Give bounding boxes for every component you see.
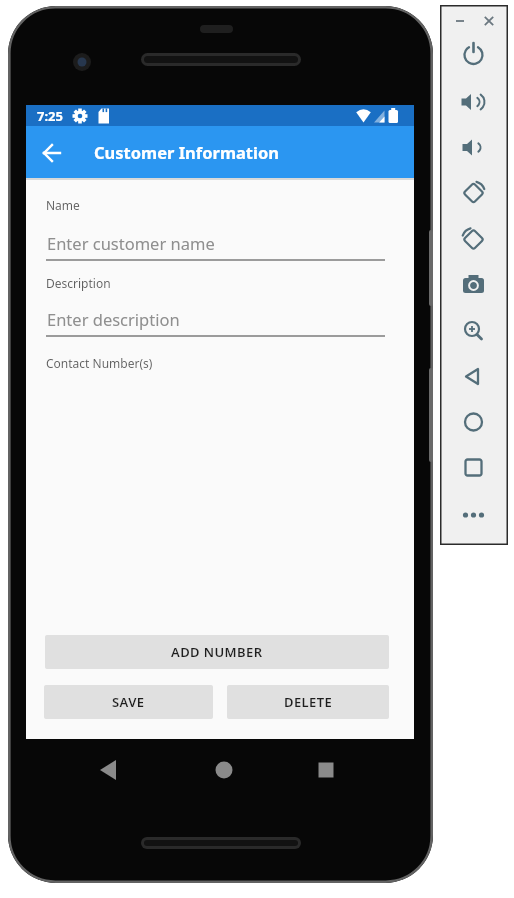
- button[interactable]: [454, 486, 492, 524]
- button[interactable]: [454, 351, 492, 389]
- button[interactable]: Enter description: [46, 305, 385, 337]
- staticText: Enter customer name: [47, 232, 215, 254]
- staticText: Description: [46, 275, 111, 291]
- button[interactable]: [454, 306, 492, 344]
- button[interactable]: Enter customer name: [46, 229, 385, 261]
- button[interactable]: [454, 171, 492, 209]
- staticText: Name: [46, 197, 80, 213]
- button[interactable]: SAVE: [44, 685, 213, 719]
- button[interactable]: ADD NUMBER: [45, 635, 389, 669]
- staticText: Customer Information: [94, 141, 279, 163]
- staticText: Enter description: [47, 308, 180, 330]
- staticText: 7:25: [37, 107, 63, 125]
- button[interactable]: [454, 126, 492, 164]
- button[interactable]: [454, 216, 492, 254]
- button[interactable]: [454, 396, 492, 434]
- staticText: DELETE: [284, 693, 333, 711]
- staticText: SAVE: [112, 693, 145, 711]
- button[interactable]: [36, 136, 68, 168]
- staticText: Contact Number(s): [46, 355, 153, 371]
- button[interactable]: DELETE: [227, 685, 389, 719]
- button[interactable]: [454, 261, 492, 299]
- staticText: ADD NUMBER: [171, 643, 263, 661]
- button[interactable]: [454, 441, 492, 479]
- button[interactable]: [454, 36, 492, 74]
- button[interactable]: [454, 81, 492, 119]
